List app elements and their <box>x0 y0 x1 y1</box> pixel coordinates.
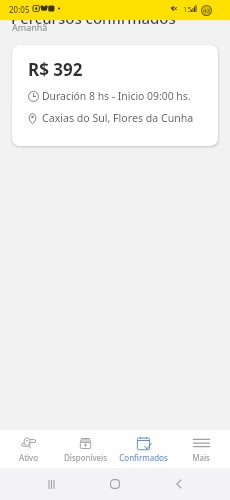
staticText: Mais <box>192 452 210 463</box>
staticText: 43 <box>203 7 210 15</box>
staticText: 15 <box>183 4 192 14</box>
staticText: Caxias do Sul, Flores da Cunha <box>42 111 194 125</box>
button[interactable]: Ativo <box>0 430 57 468</box>
staticText: Ativo <box>19 452 38 463</box>
staticText: Percursos confirmados <box>11 8 176 28</box>
button[interactable]: Recent apps <box>38 471 64 497</box>
staticText: Amanhã <box>12 21 48 33</box>
staticText: Duración 8 hs - Inicio 09:00 hs. <box>42 89 191 103</box>
staticText: Confirmados <box>119 452 168 463</box>
staticText: 20:05 <box>9 4 30 15</box>
button[interactable]: Home <box>102 471 128 497</box>
staticText: R$ 392 <box>28 58 83 81</box>
button[interactable]: Disponíveis <box>57 430 114 468</box>
button[interactable]: Back <box>166 471 192 497</box>
button[interactable]: Confirmados <box>114 430 172 468</box>
button[interactable]: Mais <box>172 430 230 468</box>
button[interactable]: R$ 392 <box>12 45 218 146</box>
staticText: Disponíveis <box>64 452 107 463</box>
